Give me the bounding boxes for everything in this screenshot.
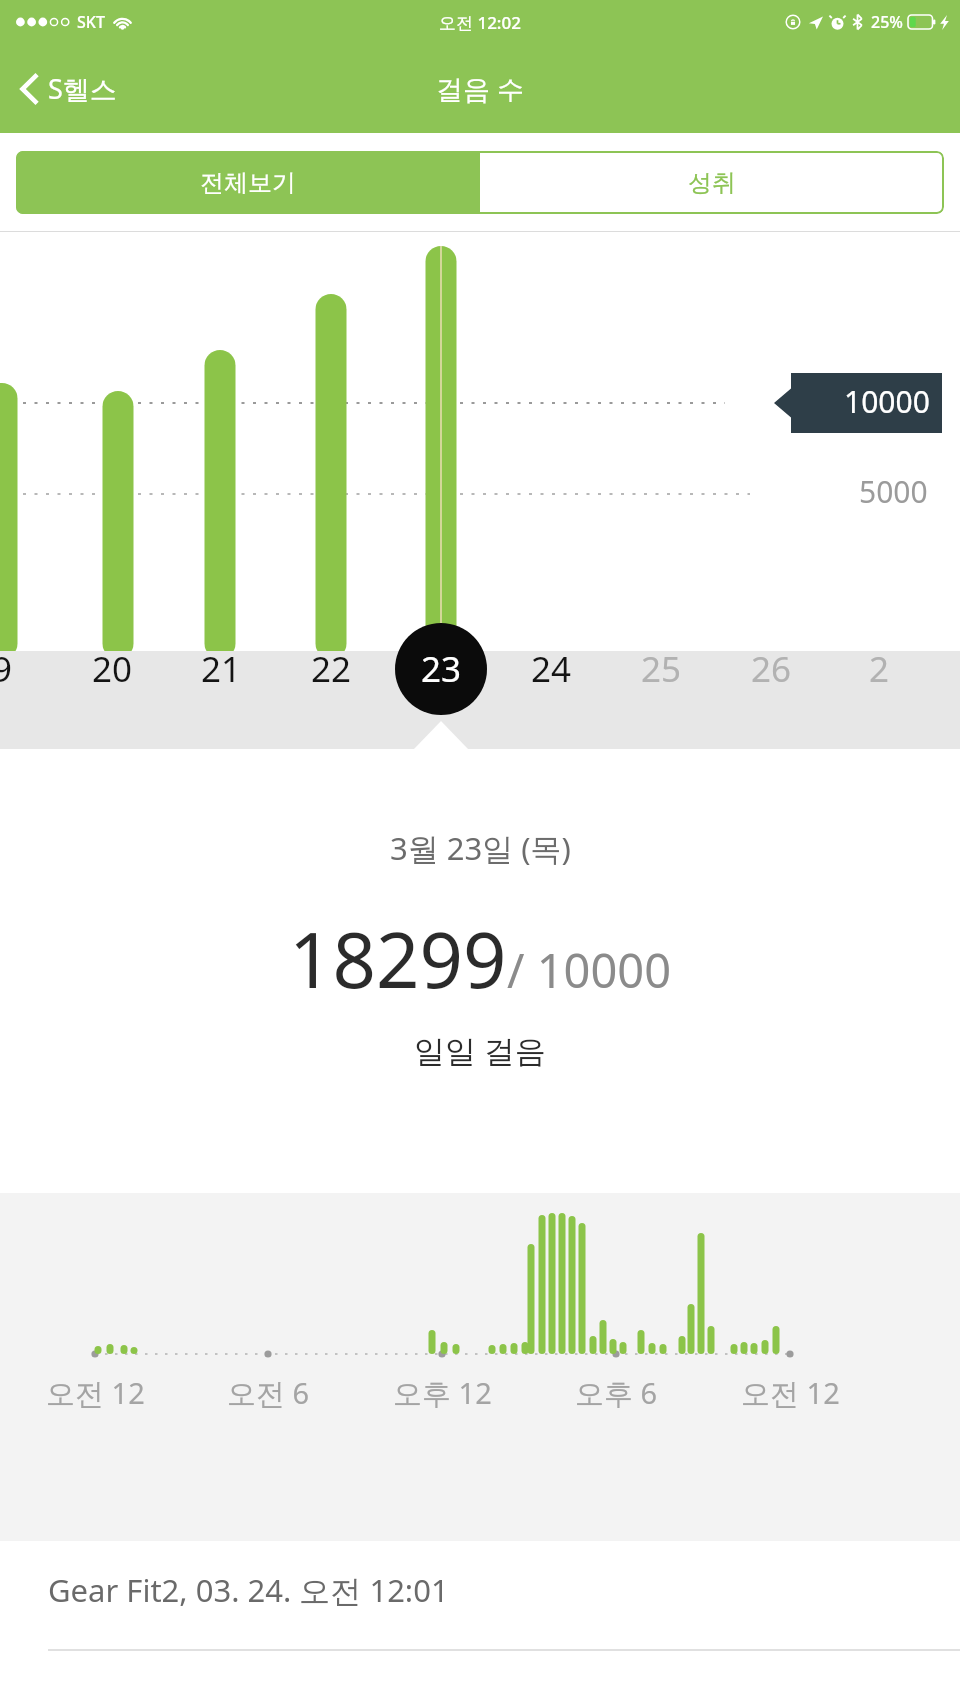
staticText: 26 [751, 645, 792, 693]
staticText: 25 [641, 645, 682, 693]
staticText: / 10000 [507, 938, 672, 1002]
button[interactable]: 2 [834, 624, 924, 714]
button[interactable]: 전체보기 [16, 151, 480, 214]
staticText: S헬스 [48, 70, 117, 107]
staticText: 일일 걸음 [414, 1029, 547, 1071]
button[interactable]: 26 [726, 624, 816, 714]
staticText: 18299 [289, 907, 507, 1011]
staticText: 오전 12 [46, 1373, 145, 1413]
other: Back [20, 73, 39, 105]
staticText: 21 [201, 645, 242, 693]
staticText: 오후 12 [393, 1373, 492, 1413]
staticText: 9 [0, 645, 13, 693]
staticText: 오전 6 [227, 1373, 310, 1413]
staticText: 20 [92, 645, 133, 693]
button[interactable]: 성취 [480, 151, 944, 214]
staticText: 5000 [859, 471, 928, 512]
button[interactable]: Back [12, 60, 125, 117]
button[interactable]: 20 [67, 624, 157, 714]
staticText: 오후 6 [575, 1373, 658, 1413]
staticText: 2 [869, 645, 890, 693]
staticText: 오전 12 [741, 1373, 840, 1413]
staticText: 24 [531, 645, 572, 693]
button[interactable]: 23 [396, 624, 486, 714]
button[interactable]: 24 [506, 624, 596, 714]
staticText: 3월 23일 (목) [390, 827, 571, 869]
staticText: 오전 12:02 [439, 11, 521, 34]
staticText: 23 [421, 645, 462, 693]
button[interactable]: 25 [616, 624, 706, 714]
staticText: SKT [77, 11, 105, 33]
staticText: 전체보기 [200, 168, 296, 198]
staticText: 10000 [844, 381, 930, 422]
staticText: 성취 [688, 168, 736, 198]
staticText: 25% [871, 11, 903, 33]
staticText: 22 [311, 645, 352, 693]
staticText: Gear Fit2, 03. 24. 오전 12:01 [48, 1569, 449, 1611]
staticText: 걸음 수 [436, 70, 525, 107]
button[interactable]: 22 [286, 624, 376, 714]
button[interactable]: 9 [0, 624, 47, 714]
button[interactable]: 21 [176, 624, 266, 714]
